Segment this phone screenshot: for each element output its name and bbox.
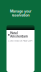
- staticText: Hotel Amsterdam: [10, 31, 28, 38]
- staticText: Manage your: [10, 9, 31, 13]
- staticText: Confirmation 4839 2014: [8, 40, 32, 42]
- staticText: reservation: [11, 13, 29, 17]
